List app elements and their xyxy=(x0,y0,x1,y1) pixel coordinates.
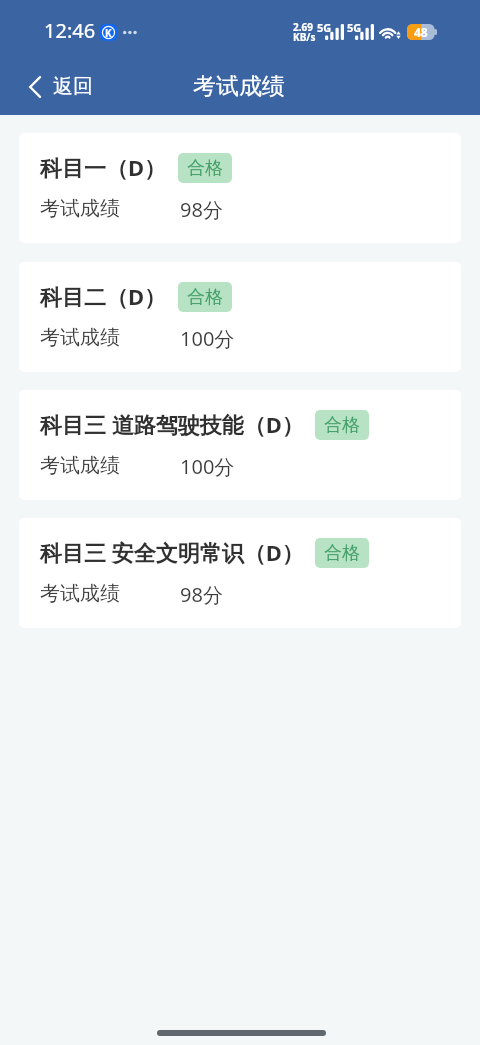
staticText: 98分 xyxy=(180,196,223,223)
staticText: 98分 xyxy=(180,581,223,608)
staticText: 合格 xyxy=(187,157,223,180)
staticText: 合格 xyxy=(187,286,223,309)
staticText: 考试成绩 xyxy=(40,581,120,606)
staticText: 考试成绩 xyxy=(40,325,120,350)
button[interactable]: 科目三 道路驾驶技能（D） xyxy=(19,390,461,500)
staticText: K xyxy=(105,26,112,40)
staticText: 48 xyxy=(414,24,428,40)
staticText: 考试成绩 xyxy=(40,453,120,478)
staticText: 科目二（D） xyxy=(40,281,167,311)
staticText: 合格 xyxy=(324,414,360,437)
staticText: 5G xyxy=(347,20,362,35)
button[interactable]: 科目二（D） xyxy=(19,262,461,372)
staticText: 100分 xyxy=(180,453,235,480)
staticText: 考试成绩 xyxy=(193,72,285,101)
staticText: 科目三 道路驾驶技能（D） xyxy=(40,409,304,439)
button[interactable]: 返回 Back xyxy=(0,65,109,108)
button[interactable]: 科目一（D） xyxy=(19,133,461,243)
button[interactable]: 科目三 安全文明常识（D） xyxy=(19,518,461,628)
staticText: 2.69 xyxy=(293,20,313,34)
staticText: 5G xyxy=(317,20,332,35)
staticText: 科目三 安全文明常识（D） xyxy=(40,537,304,567)
staticText: 合格 xyxy=(324,542,360,565)
staticText: 考试成绩 xyxy=(40,196,120,221)
staticText: KB/s xyxy=(293,30,316,44)
staticText: 科目一（D） xyxy=(40,152,167,182)
staticText: 返回 xyxy=(53,74,93,99)
staticText: 12:46 xyxy=(44,17,96,44)
staticText: 100分 xyxy=(180,325,235,352)
